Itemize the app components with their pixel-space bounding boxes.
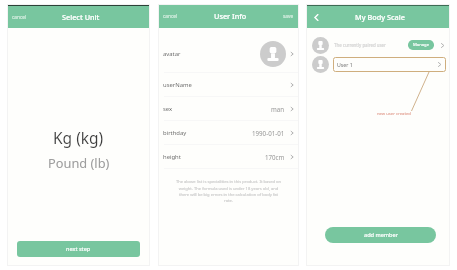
staticText: Manage (413, 42, 430, 48)
button[interactable]: next step (17, 241, 140, 257)
staticText: User Info (214, 11, 247, 21)
staticText: sex (163, 105, 173, 113)
staticText: 170cm (265, 153, 285, 161)
button[interactable]: add member (325, 227, 436, 243)
staticText: Select Unit (62, 12, 100, 22)
staticText: birthday (163, 129, 187, 137)
staticText: Kg (kg) (53, 127, 104, 148)
staticText: The above list is specialities in this p… (175, 179, 282, 203)
staticText: avatar (163, 50, 181, 58)
staticText: My Body Scale (355, 12, 405, 22)
staticText: The currently paired user (334, 42, 386, 48)
button[interactable]: save (278, 9, 299, 24)
staticText: next step (66, 245, 91, 253)
button[interactable]: avatar (158, 28, 299, 73)
staticText: add member (364, 231, 398, 239)
staticText: User 1 (337, 61, 353, 68)
staticText: cancel (163, 13, 178, 20)
button[interactable]: userName (158, 73, 299, 97)
button[interactable]: User 1 (312, 55, 446, 74)
button[interactable]: cancel (7, 10, 32, 25)
button[interactable]: Manage (408, 40, 434, 50)
staticText: Pound (lb) (48, 154, 110, 171)
staticText: height (163, 153, 181, 161)
button[interactable]: The currently paired user (312, 35, 446, 55)
staticText: save (283, 13, 294, 20)
staticText: man (271, 105, 285, 113)
button[interactable]: height (158, 145, 299, 169)
button[interactable]: Back (309, 10, 323, 24)
staticText: userName (163, 81, 192, 89)
button[interactable]: Kg (kg) (7, 126, 150, 148)
button[interactable]: Pound (lb) (7, 153, 150, 171)
button[interactable]: cancel (158, 9, 183, 24)
button[interactable]: birthday (158, 121, 299, 145)
button[interactable]: sex (158, 97, 299, 121)
staticText: 1990-01-01 (252, 129, 285, 137)
staticText: new user created (377, 111, 411, 117)
staticText: cancel (12, 14, 27, 21)
